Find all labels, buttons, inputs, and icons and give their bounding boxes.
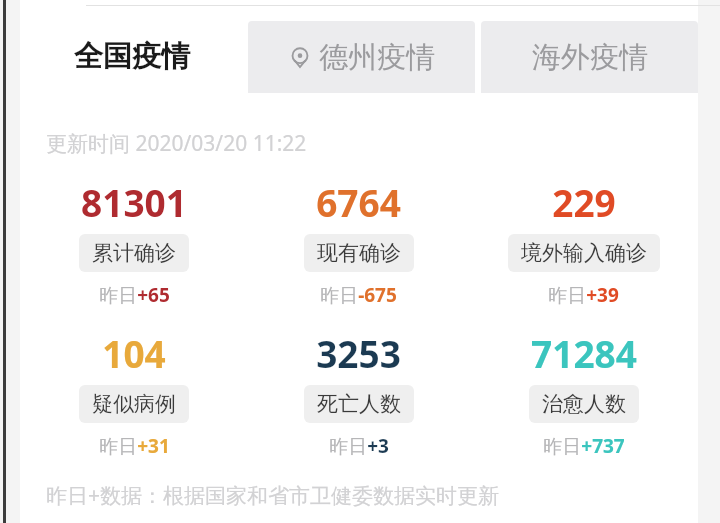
staticText: 71284: [531, 328, 637, 378]
staticText: 6764: [316, 177, 401, 227]
staticText: 昨日+3: [329, 433, 389, 459]
button[interactable]: 6764: [246, 177, 471, 308]
staticText: 昨日-675: [320, 282, 397, 308]
button[interactable]: 全国疫情: [20, 21, 243, 105]
button[interactable]: 海外疫情: [481, 21, 698, 93]
staticText: 治愈人数: [542, 391, 626, 417]
button[interactable]: 3253: [246, 328, 471, 459]
button[interactable]: 德州疫情: [248, 21, 475, 93]
staticText: 海外疫情: [532, 39, 648, 76]
staticText: 104: [102, 328, 166, 378]
button[interactable]: 104: [22, 328, 246, 459]
staticText: 德州疫情: [319, 39, 435, 76]
button[interactable]: 229: [471, 177, 696, 308]
staticText: 累计确诊: [92, 240, 176, 266]
staticText: 更新时间 2020/03/20 11:22: [46, 129, 307, 158]
button[interactable]: 71284: [471, 328, 696, 459]
staticText: 昨日+39: [548, 282, 619, 308]
button[interactable]: 81301: [22, 177, 246, 308]
staticText: 疑似病例: [92, 391, 176, 417]
staticText: 境外输入确诊: [521, 240, 647, 266]
staticText: 昨日+737: [543, 433, 625, 459]
staticText: 81301: [81, 177, 187, 227]
staticText: 昨日+65: [99, 282, 170, 308]
staticText: 死亡人数: [317, 391, 401, 417]
staticText: 全国疫情: [74, 38, 190, 75]
staticText: 昨日+31: [99, 433, 170, 459]
staticText: 昨日+数据：根据国家和省市卫健委数据实时更新: [46, 481, 500, 510]
staticText: 229: [552, 177, 616, 227]
staticText: 3253: [316, 328, 401, 378]
staticText: 现有确诊: [317, 240, 401, 266]
